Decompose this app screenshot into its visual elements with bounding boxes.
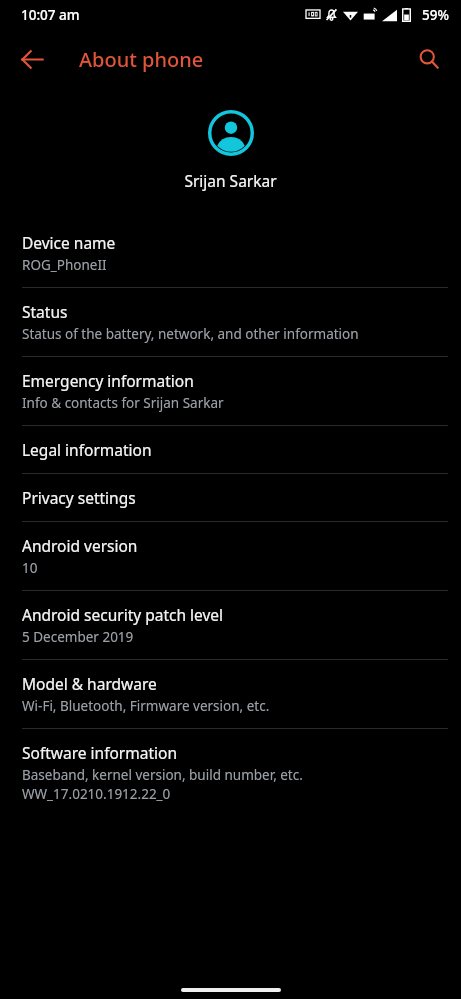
staticText: About phone [79,46,204,73]
button[interactable]: Device name [0,219,461,287]
staticText: Software information [22,742,177,763]
button[interactable]: Status [0,288,461,356]
staticText: Status of the battery, network, and othe… [22,325,359,343]
staticText: Legal information [22,439,152,460]
button[interactable]: Model & hardware [0,660,461,728]
staticText: Device name [22,232,116,253]
staticText: Model & hardware [22,673,157,694]
staticText: ROG_PhoneII [22,256,107,274]
staticText: 10:07 am [21,6,80,24]
button[interactable]: Software information [0,729,461,816]
staticText: 59% [422,6,449,24]
button[interactable]: Legal information [0,426,461,473]
staticText: Emergency information [22,370,194,391]
staticText: WW_17.0210.1912.22_0 [22,785,171,803]
staticText: Android version [22,535,138,556]
staticText: Info & contacts for Srijan Sarkar [22,394,224,412]
staticText: Baseband, kernel version, build number, … [22,766,303,784]
staticText: 10 [22,559,38,577]
button[interactable]: Search [405,35,453,83]
staticText: Srijan Sarkar [184,170,277,191]
button[interactable]: Emergency information [0,357,461,425]
button[interactable]: Android security patch level [0,591,461,659]
button[interactable]: Privacy settings [0,474,461,521]
staticText: Wi-Fi, Bluetooth, Firmware version, etc. [22,697,270,715]
staticText: Status [22,301,68,322]
button[interactable]: Back [8,35,56,83]
button[interactable]: Android version [0,522,461,590]
staticText: 5 December 2019 [22,628,134,646]
staticText: Android security patch level [22,604,224,625]
staticText: Privacy settings [22,487,136,508]
